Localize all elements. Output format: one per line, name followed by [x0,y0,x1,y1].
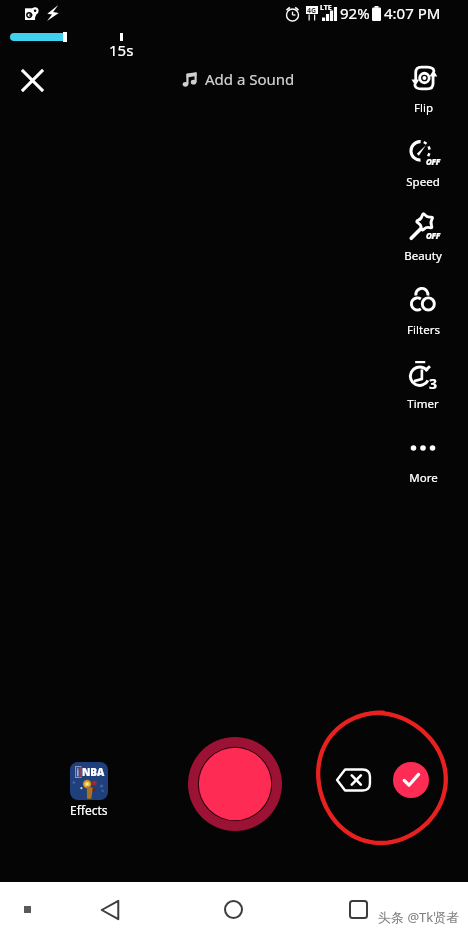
staticText: 4:07 PM [384,3,441,23]
staticText: OFF [426,230,440,241]
button[interactable]: Add a Sound [182,67,295,91]
staticText: Beauty [404,248,442,264]
staticText: Effects [70,802,108,818]
button[interactable]: Flip [395,56,451,108]
button[interactable]: NBA [65,758,112,818]
button[interactable]: Back [92,892,127,927]
button[interactable]: Recents [341,892,376,927]
staticText: Add a Sound [205,69,295,89]
button[interactable]: OFF [395,204,451,256]
button[interactable]: More [395,426,451,478]
button[interactable]: Home [216,892,251,927]
button[interactable]: 3 [395,352,451,404]
staticText: NBA [82,765,105,779]
button[interactable]: Close [14,62,51,99]
staticText: 4G [307,6,317,14]
staticText: 3 [429,374,438,393]
staticText: 15s [109,40,134,60]
staticText: Flip [414,100,433,116]
staticText: Speed [406,174,440,190]
button[interactable]: OFF [395,130,451,182]
button[interactable]: Confirm [393,762,429,798]
staticText: Timer [407,396,439,412]
button[interactable]: Filters [395,278,451,330]
button[interactable]: Record [188,737,282,831]
staticText: 92% [340,3,370,23]
staticText: LTE [320,3,332,13]
staticText: Filters [407,322,440,338]
staticText: OFF [426,156,440,167]
button[interactable]: Delete last clip [336,768,371,792]
staticText: More [409,470,438,486]
staticText: 头条 @Tk贤者 [378,908,460,926]
